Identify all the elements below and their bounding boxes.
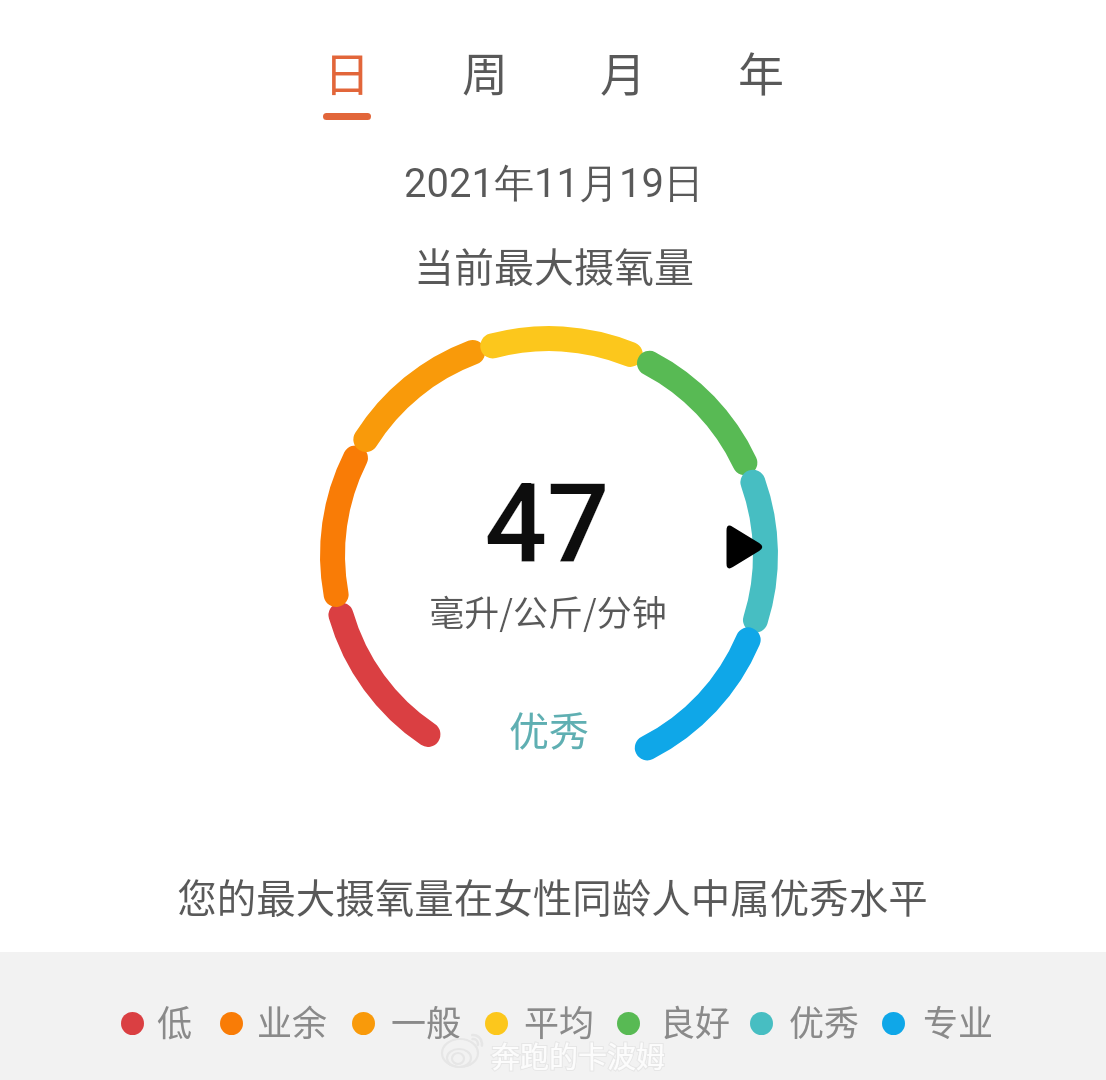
staticText: 47	[484, 460, 610, 589]
staticText: 当前最大摄氧量	[414, 236, 694, 294]
button[interactable]: 业余	[220, 994, 328, 1046]
staticText: 年	[738, 38, 784, 105]
staticText: 月	[600, 38, 646, 105]
button[interactable]: 专业	[882, 994, 994, 1046]
other: 最大摄氧量 47 毫升每公斤每分钟，等级优秀	[0, 0, 1106, 1080]
other: 微博水印	[0, 0, 1106, 1080]
staticText: 平均	[524, 995, 595, 1046]
button[interactable]: 年	[716, 38, 806, 130]
button[interactable]: 一般	[352, 994, 462, 1046]
staticText: 低	[157, 995, 193, 1046]
staticText: 奔跑的卡波姆	[491, 1034, 666, 1076]
staticText: 2021年11月19日	[404, 158, 704, 208]
staticText: 日	[324, 38, 370, 105]
staticText: 周	[462, 38, 508, 105]
staticText: 专业	[923, 995, 994, 1046]
button[interactable]: 优秀	[750, 994, 860, 1046]
staticText: 一般	[391, 995, 462, 1046]
button[interactable]: 平均	[485, 994, 595, 1046]
button[interactable]: 良好	[617, 994, 731, 1046]
staticText: 业余	[257, 995, 328, 1046]
staticText: 优秀	[509, 700, 589, 758]
button[interactable]: 周	[440, 38, 530, 130]
button[interactable]: 日	[302, 38, 392, 130]
staticText: 优秀	[789, 995, 860, 1046]
staticText: 奔跑的卡波姆	[491, 1034, 666, 1076]
button[interactable]: 月	[578, 38, 668, 130]
button[interactable]: 低	[121, 994, 193, 1046]
staticText: 良好	[660, 995, 731, 1046]
staticText: 您的最大摄氧量在女性同龄人中属优秀水平	[177, 867, 928, 924]
staticText: 毫升/公斤/分钟	[429, 585, 667, 636]
